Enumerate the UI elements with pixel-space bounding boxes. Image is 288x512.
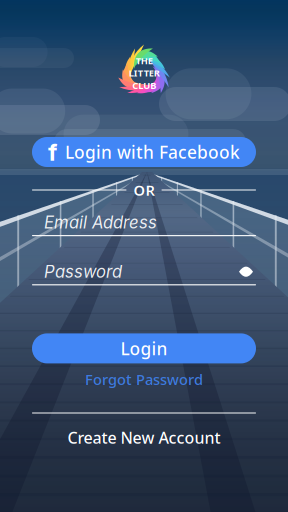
staticText: OR [133, 180, 154, 200]
button[interactable]: Create New Account [32, 431, 256, 445]
staticText: Password [44, 262, 122, 282]
staticText: Email Address [44, 212, 157, 233]
staticText: Login with Facebook [65, 140, 240, 163]
button[interactable]: Show password [236, 264, 256, 280]
button[interactable]: Forgot Password [32, 372, 256, 386]
staticText: THE LITTER CLUB [128, 54, 159, 92]
staticText: Forgot Password [85, 370, 203, 389]
staticText: Create New Account [67, 427, 220, 448]
button[interactable]: Login [32, 333, 256, 363]
button[interactable]: f [32, 137, 256, 167]
staticText: f [48, 137, 57, 166]
staticText: Login [120, 337, 167, 360]
